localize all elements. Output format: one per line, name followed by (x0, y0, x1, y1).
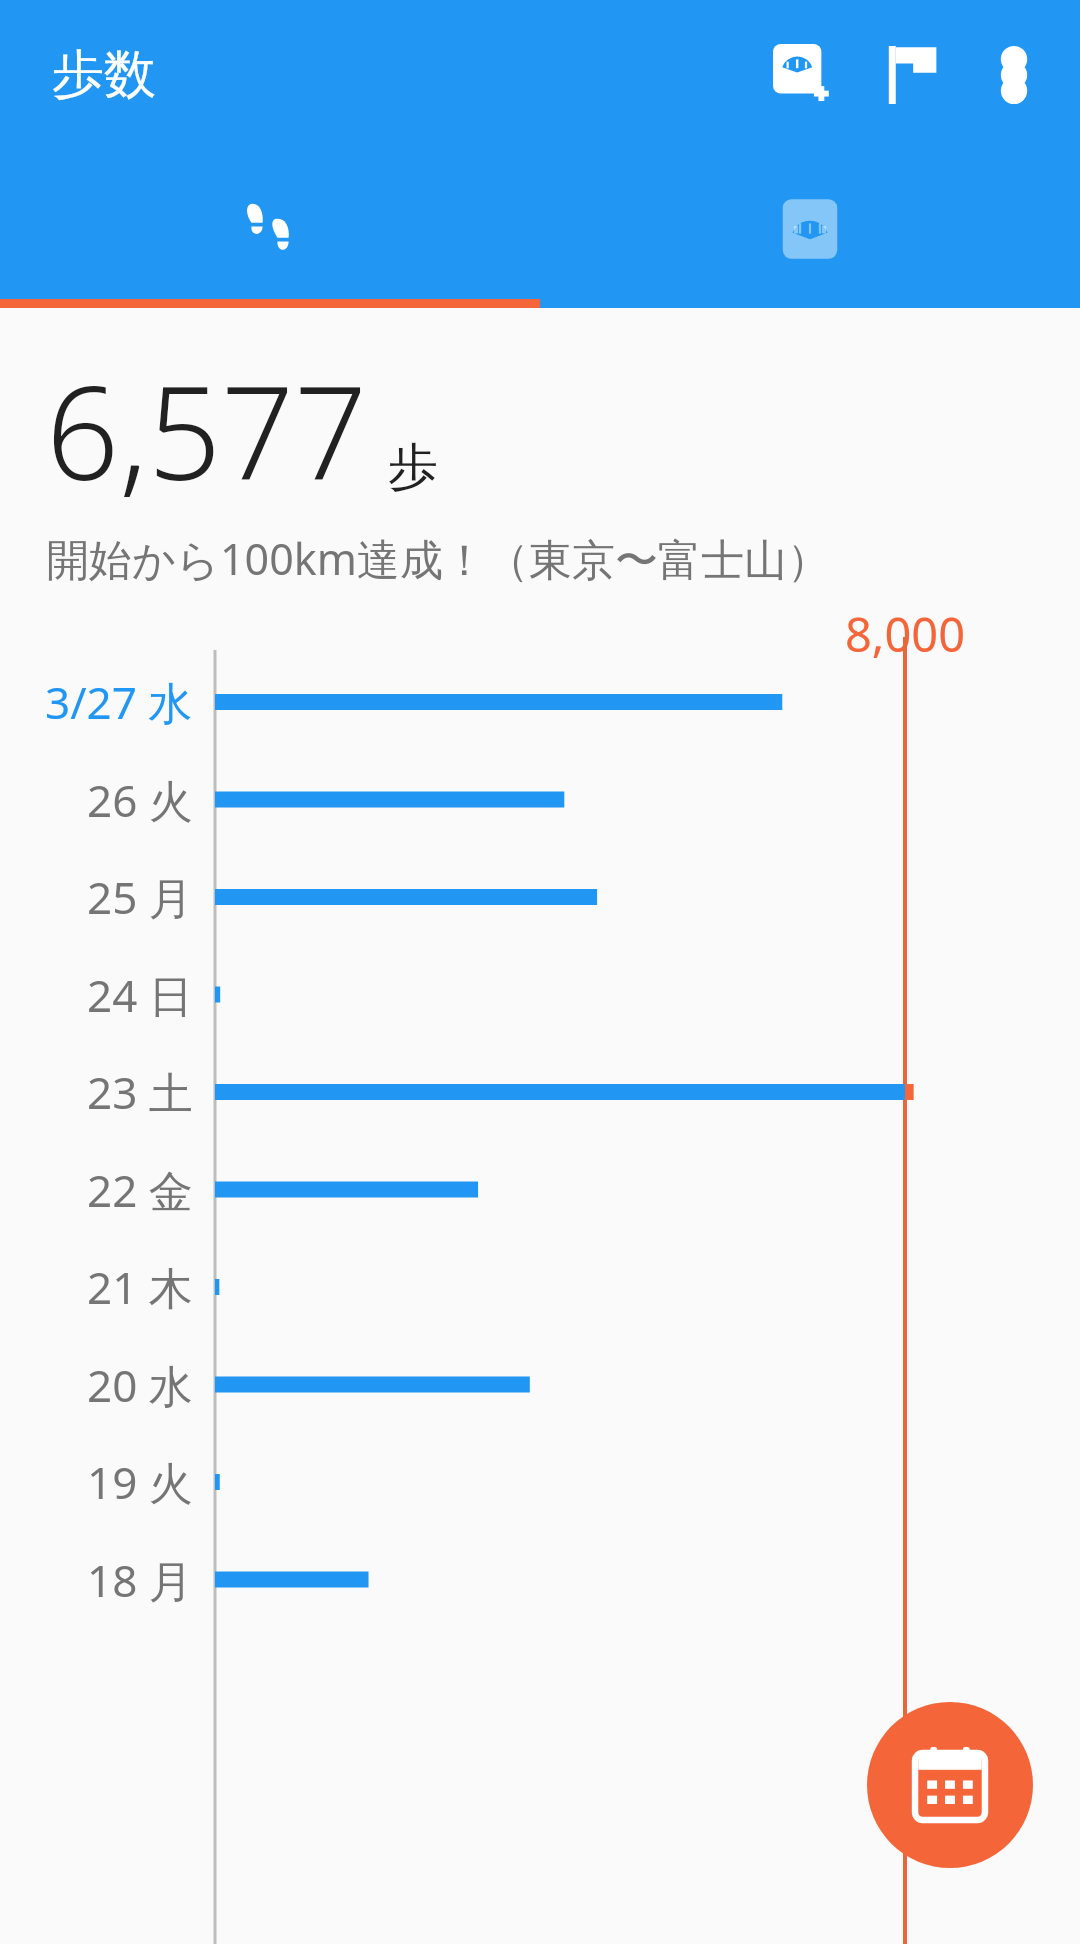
button[interactable]: Weight tab (540, 150, 1080, 308)
staticText: 23 土 (87, 1062, 193, 1122)
staticText: 18 月 (87, 1550, 193, 1610)
button[interactable]: Steps tab (0, 150, 540, 308)
button[interactable]: 22 金 (0, 1156, 193, 1224)
staticText: 25 月 (87, 867, 193, 927)
button[interactable]: 21 木 (0, 1253, 193, 1321)
staticText: 8,000 (795, 602, 1015, 666)
button[interactable]: Calendar (867, 1702, 1033, 1868)
button[interactable]: 18 月 (0, 1546, 193, 1614)
button[interactable]: Goal (858, 21, 966, 129)
button[interactable]: Add weight (750, 21, 858, 129)
button[interactable]: 24 日 (0, 961, 193, 1029)
staticText: 21 木 (87, 1257, 193, 1317)
button[interactable]: 26 火 (0, 766, 193, 834)
button[interactable]: 3/27 水 (0, 668, 193, 736)
staticText: 22 金 (87, 1160, 193, 1220)
button[interactable]: 19 火 (0, 1448, 193, 1516)
staticText: 歩 (388, 436, 438, 499)
staticText: 26 火 (87, 770, 193, 830)
staticText: 3/27 水 (45, 672, 193, 732)
button[interactable]: 23 土 (0, 1058, 193, 1126)
staticText: 24 日 (87, 965, 193, 1025)
staticText: 開始から100km達成！（東京〜富士山） (46, 529, 830, 588)
staticText: 歩数 (52, 42, 156, 108)
staticText: 6,577 (46, 343, 368, 517)
staticText: 20 水 (87, 1355, 193, 1415)
button[interactable]: 20 水 (0, 1351, 193, 1419)
button[interactable]: 25 月 (0, 863, 193, 931)
button[interactable]: More options (966, 27, 1062, 123)
staticText: 19 火 (87, 1452, 193, 1512)
